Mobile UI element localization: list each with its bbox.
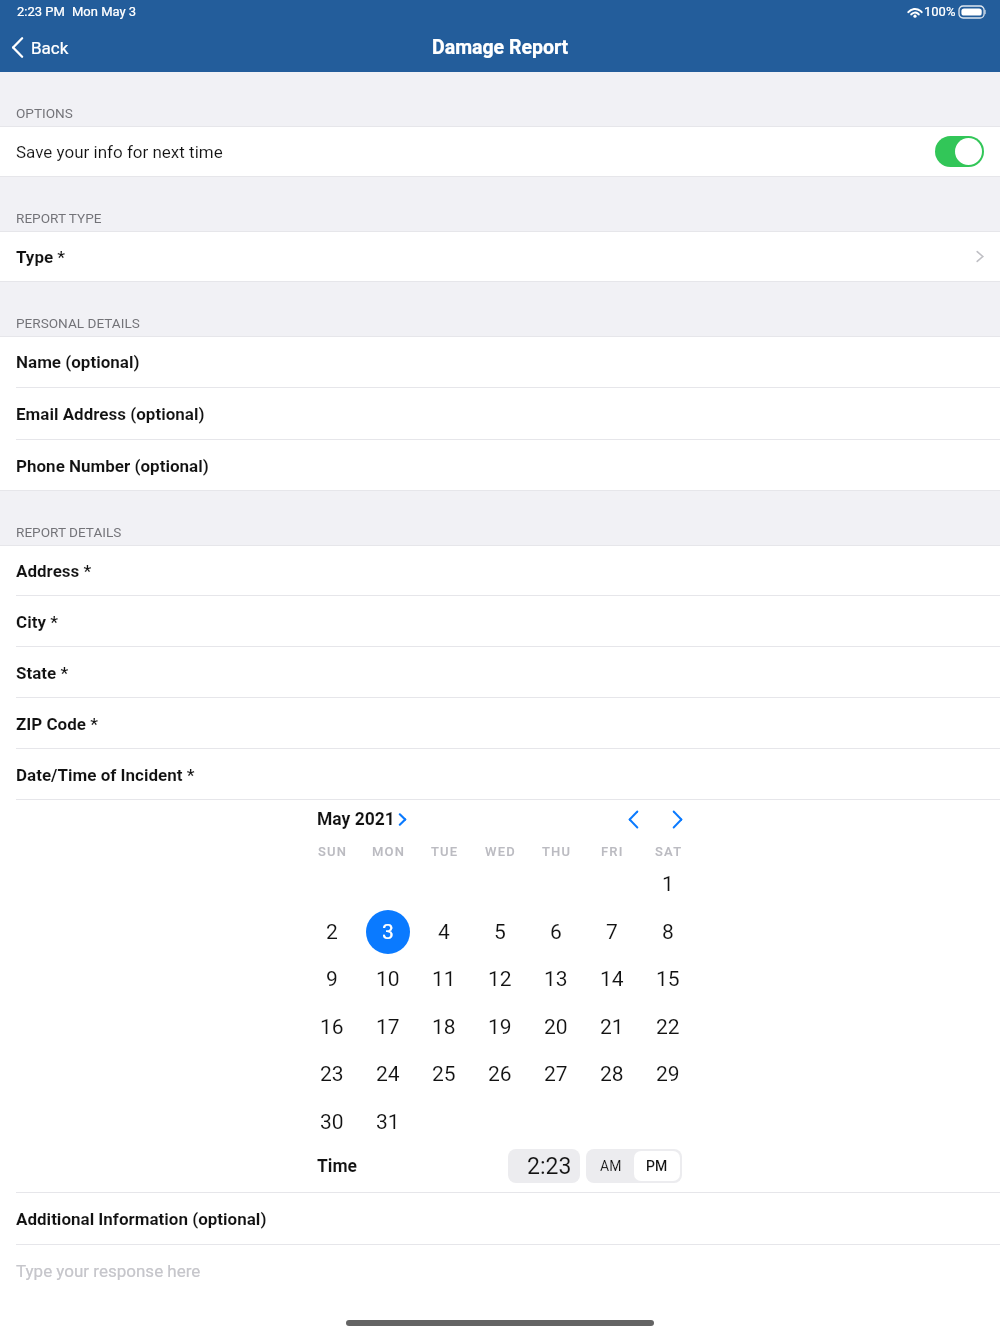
button[interactable]: Save your info for next time [935, 136, 984, 167]
staticText: MON [372, 844, 406, 859]
button[interactable]: Save your info for next time [0, 126, 1000, 177]
staticText: 3 [382, 920, 394, 945]
button[interactable]: 3 [360, 908, 416, 955]
button[interactable]: Type * [0, 231, 1000, 282]
button[interactable]: Next month [664, 803, 690, 835]
staticText: Back [31, 38, 69, 58]
staticText: 2:23 PM [17, 4, 65, 19]
button[interactable]: 21 [584, 1003, 640, 1050]
button[interactable]: ZIP Code * [0, 698, 1000, 749]
staticText: 15 [656, 967, 680, 992]
staticText: Save your info for next time [16, 142, 223, 162]
staticText: SAT [655, 844, 683, 859]
staticText: THU [542, 844, 572, 859]
button[interactable]: 15 [640, 955, 696, 1003]
staticText: 21 [600, 1015, 624, 1040]
staticText: Type * [16, 247, 66, 267]
button[interactable]: 25 [416, 1050, 472, 1098]
button[interactable]: Date/Time of Incident * [0, 749, 1000, 800]
button[interactable]: Back [0, 23, 83, 72]
button[interactable]: 22 [640, 1003, 696, 1050]
button[interactable]: Address * [0, 545, 1000, 596]
button[interactable]: 7 [584, 908, 640, 955]
button[interactable]: 19 [472, 1003, 528, 1050]
button[interactable]: Name (optional) [0, 336, 1000, 387]
button[interactable]: 1 [640, 860, 696, 908]
staticText: 7 [606, 920, 618, 945]
button[interactable]: Email Address (optional) [0, 388, 1000, 439]
button[interactable]: State * [0, 647, 1000, 698]
staticText: WED [485, 844, 516, 859]
button[interactable]: 29 [640, 1050, 696, 1098]
staticText: 2:23 [527, 1153, 572, 1180]
staticText: 5 [494, 920, 506, 945]
staticText: 31 [376, 1110, 400, 1135]
button[interactable]: 6 [528, 908, 584, 955]
button[interactable]: 30 [304, 1098, 360, 1145]
button[interactable]: Phone Number (optional) [0, 440, 1000, 491]
staticText: ZIP Code * [16, 714, 98, 734]
staticText: Time [317, 1156, 358, 1177]
staticText: 2 [326, 920, 338, 945]
button[interactable]: 16 [304, 1003, 360, 1050]
button[interactable]: 18 [416, 1003, 472, 1050]
button[interactable]: 23 [304, 1050, 360, 1098]
button[interactable]: 10 [360, 955, 416, 1003]
staticText: Phone Number (optional) [16, 456, 209, 476]
staticText: 20 [544, 1015, 568, 1040]
staticText: May 2021 [317, 809, 395, 830]
staticText: 23 [320, 1062, 344, 1087]
button[interactable]: 11 [416, 955, 472, 1003]
staticText: 22 [656, 1015, 680, 1040]
staticText: 11 [432, 967, 456, 992]
staticText: 28 [600, 1062, 624, 1087]
staticText: PM [646, 1158, 668, 1174]
button[interactable]: 5 [472, 908, 528, 955]
button[interactable]: 27 [528, 1050, 584, 1098]
button[interactable]: 13 [528, 955, 584, 1003]
button[interactable]: 2:23 [508, 1149, 580, 1183]
button[interactable]: City * [0, 596, 1000, 647]
staticText: FRI [601, 844, 624, 859]
other: Back [12, 37, 23, 58]
staticText: 6 [550, 920, 562, 945]
staticText: 17 [376, 1015, 400, 1040]
staticText: 19 [488, 1015, 512, 1040]
staticText: 12 [488, 967, 512, 992]
staticText: 25 [432, 1062, 456, 1087]
button[interactable]: 8 [640, 908, 696, 955]
button[interactable]: AM [588, 1151, 634, 1181]
button[interactable]: 17 [360, 1003, 416, 1050]
button[interactable]: 4 [416, 908, 472, 955]
button[interactable]: 12 [472, 955, 528, 1003]
staticText: State * [16, 663, 69, 683]
staticText: TUE [431, 844, 459, 859]
staticText: 27 [544, 1062, 568, 1087]
button[interactable]: May 2021 [317, 809, 407, 830]
staticText: 16 [320, 1015, 344, 1040]
button[interactable]: 9 [304, 955, 360, 1003]
staticText: AM [600, 1158, 622, 1174]
staticText: 100% [924, 4, 956, 19]
button[interactable]: 2 [304, 908, 360, 955]
staticText: Address * [16, 561, 92, 581]
staticText: 26 [488, 1062, 512, 1087]
button[interactable]: Type your response here [0, 1245, 1000, 1297]
button[interactable]: 20 [528, 1003, 584, 1050]
staticText: 1 [662, 872, 674, 897]
button[interactable]: 24 [360, 1050, 416, 1098]
staticText: Email Address (optional) [16, 404, 205, 424]
staticText: 4 [438, 920, 450, 945]
button[interactable]: 28 [584, 1050, 640, 1098]
button[interactable]: 26 [472, 1050, 528, 1098]
staticText: 29 [656, 1062, 680, 1087]
button[interactable]: Additional Information (optional) [0, 1193, 1000, 1244]
button[interactable]: Previous month [620, 803, 646, 835]
button[interactable]: 14 [584, 955, 640, 1003]
button[interactable]: 31 [360, 1098, 416, 1145]
staticText: SUN [318, 844, 348, 859]
staticText: Damage Report [432, 36, 569, 59]
staticText: 10 [376, 967, 400, 992]
button[interactable]: PM [634, 1151, 680, 1181]
staticText: REPORT DETAILS [16, 524, 122, 540]
